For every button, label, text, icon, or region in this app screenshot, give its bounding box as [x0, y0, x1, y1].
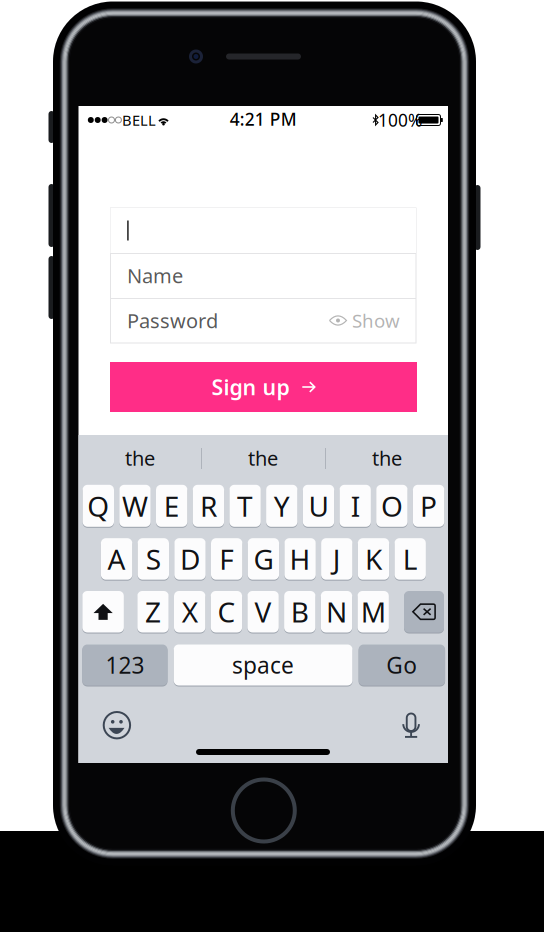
button[interactable]: Delete: [404, 590, 444, 633]
staticText: 123: [105, 650, 144, 680]
button[interactable]: D: [174, 538, 206, 580]
button[interactable]: G: [248, 538, 279, 580]
button[interactable]: C: [211, 590, 242, 633]
staticText: H: [290, 540, 311, 578]
button[interactable]: F: [211, 538, 242, 580]
button[interactable]: O: [376, 484, 408, 527]
button[interactable]: the: [203, 435, 323, 481]
button[interactable]: Sign up: [110, 362, 417, 412]
staticText: X: [182, 593, 198, 630]
button[interactable]: U: [303, 484, 334, 527]
button[interactable]: W: [119, 484, 151, 527]
staticText: F: [219, 540, 234, 578]
button[interactable]: Email: [110, 208, 416, 253]
button[interactable]: X: [174, 590, 205, 633]
button[interactable]: I: [339, 484, 371, 527]
staticText: E: [164, 487, 180, 524]
staticText: R: [200, 487, 217, 524]
button[interactable]: V: [247, 590, 279, 633]
staticText: V: [255, 593, 272, 630]
staticText: the: [125, 445, 155, 471]
button[interactable]: Y: [266, 484, 297, 527]
staticText: N: [326, 593, 347, 630]
staticText: T: [237, 487, 253, 524]
button[interactable]: N: [321, 590, 352, 633]
button[interactable]: J: [321, 538, 352, 580]
staticText: L: [403, 540, 418, 578]
button[interactable]: T: [229, 484, 261, 527]
staticText: Z: [145, 593, 161, 630]
button[interactable]: Shift: [82, 590, 124, 633]
staticText: Sign up: [211, 373, 289, 401]
button[interactable]: Z: [137, 590, 169, 633]
staticText: P: [420, 487, 437, 524]
button[interactable]: Emoji: [95, 703, 139, 747]
staticText: K: [365, 540, 382, 578]
button[interactable]: S: [138, 538, 169, 580]
button[interactable]: Name: [110, 253, 416, 298]
button[interactable]: the: [327, 435, 447, 481]
staticText: space: [232, 650, 294, 680]
button[interactable]: R: [193, 484, 224, 527]
staticText: Go: [386, 650, 417, 680]
button[interactable]: M: [357, 590, 389, 633]
button[interactable]: P: [413, 484, 444, 527]
staticText: BELL: [122, 110, 156, 130]
staticText: B: [291, 593, 309, 630]
staticText: Name: [127, 262, 183, 289]
staticText: 100%: [378, 108, 422, 131]
button[interactable]: Go: [359, 644, 445, 686]
staticText: I: [351, 487, 360, 524]
staticText: C: [217, 593, 235, 630]
staticText: J: [333, 540, 341, 578]
button[interactable]: L: [394, 538, 426, 580]
button[interactable]: Dictation: [389, 703, 433, 747]
button[interactable]: A: [101, 538, 132, 580]
button[interactable]: Password: [110, 298, 416, 343]
staticText: M: [361, 593, 386, 630]
staticText: 4:21 PM: [230, 107, 297, 130]
staticText: Show: [347, 308, 400, 333]
staticText: Password: [127, 307, 218, 334]
button[interactable]: 123: [82, 644, 167, 686]
button[interactable]: K: [358, 538, 389, 580]
staticText: U: [308, 487, 328, 524]
staticText: S: [146, 540, 161, 578]
staticText: the: [248, 445, 278, 471]
button[interactable]: E: [156, 484, 187, 527]
staticText: Q: [87, 487, 109, 524]
staticText: W: [122, 487, 148, 524]
button[interactable]: space: [174, 644, 352, 686]
staticText: G: [253, 540, 273, 578]
button[interactable]: Q: [83, 484, 114, 527]
button[interactable]: B: [284, 590, 315, 633]
staticText: A: [108, 540, 126, 578]
staticText: Y: [274, 487, 290, 524]
button[interactable]: H: [284, 538, 316, 580]
staticText: D: [180, 540, 200, 578]
staticText: O: [381, 487, 403, 524]
staticText: the: [372, 445, 402, 471]
button[interactable]: the: [80, 435, 200, 481]
